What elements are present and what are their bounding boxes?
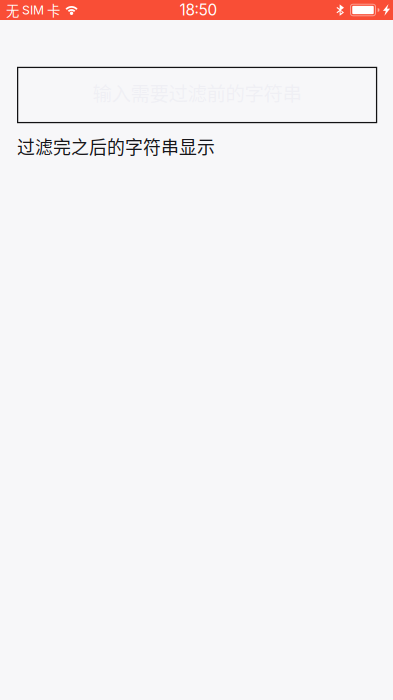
staticText: 无 — [6, 0, 19, 20]
button[interactable]: 输入需要过滤前的字符串 — [17, 67, 377, 123]
staticText: 卡 — [47, 0, 60, 20]
staticText: 过滤完之后的字符串显示 — [17, 133, 215, 159]
staticText: 18:50 — [179, 1, 217, 19]
staticText: SIM — [22, 3, 44, 17]
